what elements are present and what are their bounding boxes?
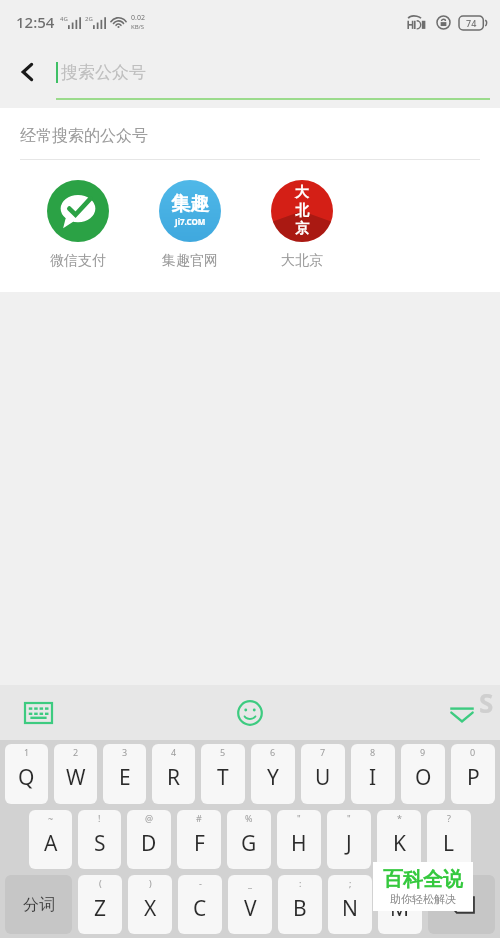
button[interactable]: 6 — [251, 744, 295, 804]
button[interactable]: ( — [78, 875, 122, 934]
staticText: " — [297, 812, 301, 824]
staticText: B — [293, 894, 307, 923]
staticText: G — [241, 829, 257, 858]
button[interactable]: ) — [128, 875, 172, 934]
staticText: 北 — [295, 202, 309, 220]
staticText: X — [144, 894, 157, 923]
staticText: 大 — [295, 184, 309, 202]
staticText: ! — [98, 812, 101, 824]
button[interactable]: 微信支付 — [22, 180, 134, 270]
button[interactable]: " — [277, 810, 321, 869]
button[interactable]: 搜索公众号 — [56, 44, 490, 100]
staticText: 12:54 — [16, 12, 55, 32]
staticText: 2 — [73, 746, 79, 758]
button[interactable]: 0 — [451, 744, 495, 804]
button[interactable]: Back — [0, 44, 56, 100]
staticText: J — [346, 829, 352, 858]
staticText: 大北京 — [281, 252, 323, 270]
staticText: T — [217, 763, 229, 792]
staticText: S — [479, 685, 494, 720]
staticText: ~ — [48, 812, 54, 824]
button[interactable]: 2 — [54, 744, 97, 804]
button[interactable]: ? — [427, 810, 471, 869]
button[interactable]: ~ — [29, 810, 72, 869]
staticText: 经常搜索的公众号 — [20, 126, 148, 146]
staticText: 4 — [171, 746, 177, 758]
staticText: ; — [349, 877, 352, 889]
button[interactable]: 大 — [246, 180, 358, 270]
staticText: I — [369, 763, 377, 792]
staticText: 3 — [122, 746, 128, 758]
staticText: 4G — [60, 15, 68, 23]
button[interactable]: Emoji — [228, 691, 272, 735]
staticText: 5 — [220, 746, 226, 758]
staticText: 1 — [24, 746, 30, 758]
button[interactable]: Keyboard layout — [18, 693, 58, 733]
button[interactable]: 3 — [103, 744, 146, 804]
staticText: N — [342, 894, 358, 923]
staticText: Q — [18, 763, 35, 792]
staticText: Z — [94, 894, 107, 923]
staticText: F — [194, 829, 205, 858]
button[interactable]: 9 — [401, 744, 445, 804]
button[interactable]: 1 — [5, 744, 48, 804]
staticText: / — [398, 877, 402, 889]
staticText: _ — [248, 877, 252, 889]
button[interactable]: " — [327, 810, 371, 869]
staticText: 0.02 — [131, 13, 145, 23]
staticText: : — [299, 877, 302, 889]
staticText: 京 — [295, 220, 309, 238]
staticText: Ji7.COM — [175, 216, 206, 227]
staticText: 8 — [370, 746, 376, 758]
button[interactable]: 7 — [301, 744, 345, 804]
button[interactable]: 集趣 — [134, 180, 246, 270]
button[interactable]: # — [177, 810, 221, 869]
staticText: @ — [145, 812, 154, 824]
button[interactable]: Hide keyboard — [440, 691, 484, 735]
button[interactable]: / — [378, 875, 422, 934]
staticText: 搜索公众号 — [61, 62, 146, 83]
button[interactable]: _ — [228, 875, 272, 934]
staticText: ( — [99, 877, 102, 889]
button[interactable]: : — [278, 875, 322, 934]
staticText: 0 — [470, 746, 476, 758]
staticText: A — [44, 829, 58, 858]
staticText: E — [119, 763, 131, 792]
button[interactable]: Backspace — [428, 875, 495, 934]
staticText: 微信支付 — [50, 252, 106, 270]
button[interactable]: ; — [328, 875, 372, 934]
staticText: 6 — [270, 746, 276, 758]
button[interactable]: 5 — [201, 744, 245, 804]
staticText: K — [393, 829, 406, 858]
staticText: - — [199, 877, 202, 889]
staticText: L — [443, 829, 455, 858]
staticText: % — [245, 812, 253, 824]
staticText: ? — [447, 812, 451, 824]
staticText: O — [415, 763, 432, 792]
staticText: 74 — [466, 17, 477, 29]
button[interactable]: ! — [78, 810, 121, 869]
staticText: S — [94, 829, 106, 858]
staticText: 9 — [420, 746, 426, 758]
staticText: 7 — [320, 746, 326, 758]
button[interactable]: * — [377, 810, 421, 869]
button[interactable]: 4 — [152, 744, 195, 804]
staticText: KB/S — [131, 23, 145, 31]
button[interactable]: % — [227, 810, 271, 869]
staticText: M — [390, 894, 410, 923]
staticText: 分词 — [23, 895, 55, 915]
staticText: U — [315, 763, 331, 792]
staticText: C — [193, 894, 207, 923]
staticText: 集趣官网 — [162, 252, 218, 270]
staticText: 百科全说 — [383, 867, 463, 892]
staticText: 集趣 — [171, 192, 209, 216]
staticText: ) — [149, 877, 152, 889]
staticText: 助你轻松解决 — [390, 892, 456, 906]
button[interactable]: 分词 — [5, 875, 72, 934]
staticText: D — [141, 829, 157, 858]
staticText: Y — [267, 763, 279, 792]
button[interactable]: - — [178, 875, 222, 934]
staticText: H — [291, 829, 307, 858]
button[interactable]: 8 — [351, 744, 395, 804]
button[interactable]: @ — [127, 810, 171, 869]
